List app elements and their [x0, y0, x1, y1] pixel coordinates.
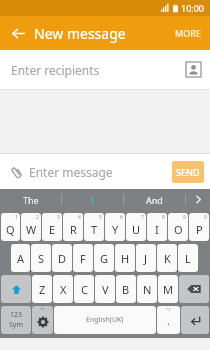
button[interactable]: English(UK): [54, 306, 156, 334]
button[interactable]: Settings: [32, 306, 53, 334]
button[interactable]: K: [157, 244, 177, 272]
staticText: D: [58, 251, 67, 266]
button[interactable]: C: [74, 275, 94, 303]
button[interactable]: A: [11, 244, 30, 272]
button[interactable]: Attach: [5, 161, 27, 183]
button[interactable]: Add contact: [186, 62, 201, 77]
staticText: F: [80, 251, 86, 266]
button[interactable]: G: [94, 244, 114, 272]
staticText: ''': [41, 307, 45, 314]
button[interactable]: 8: [147, 213, 167, 241]
staticText: U: [132, 222, 141, 237]
button[interactable]: H: [115, 244, 135, 272]
staticText: 10:00: [181, 2, 205, 14]
button[interactable]: 1: [1, 213, 20, 241]
button[interactable]: B: [116, 275, 136, 303]
staticText: SEND: [176, 166, 200, 178]
button[interactable]: 6: [105, 213, 125, 241]
staticText: N: [143, 282, 152, 297]
button[interactable]: The: [0, 189, 61, 210]
button[interactable]: J: [136, 244, 156, 272]
staticText: English(UK): [86, 315, 124, 325]
button[interactable]: S: [31, 244, 51, 272]
staticText: I: [155, 222, 159, 237]
button[interactable]: More suggestions: [186, 189, 210, 210]
staticText: S: [38, 251, 45, 266]
staticText: P: [196, 222, 203, 237]
staticText: Enter message: [29, 164, 172, 180]
staticText: X: [60, 282, 67, 297]
staticText: Y: [112, 222, 119, 237]
button[interactable]: D: [52, 244, 72, 272]
staticText: 4: [78, 214, 81, 221]
staticText: G: [100, 251, 109, 266]
staticText: Sym: [9, 320, 23, 330]
staticText: R: [70, 222, 77, 237]
staticText: A: [17, 251, 25, 266]
staticText: 3: [57, 214, 60, 221]
button[interactable]: ''?: [157, 306, 180, 334]
button[interactable]: F: [73, 244, 93, 272]
staticText: And: [146, 194, 163, 206]
button[interactable]: And: [124, 189, 185, 210]
button[interactable]: X: [53, 275, 73, 303]
staticText: H: [121, 251, 130, 266]
staticText: ''?: [166, 307, 171, 314]
button[interactable]: I: [62, 189, 123, 210]
staticText: The: [23, 194, 39, 206]
staticText: W: [26, 222, 37, 237]
staticText: 123: [10, 310, 23, 320]
staticText: New message: [34, 24, 126, 43]
button[interactable]: 9: [168, 213, 188, 241]
button[interactable]: 4: [63, 213, 83, 241]
staticText: 5: [99, 214, 102, 221]
button[interactable]: Shift: [1, 275, 31, 303]
staticText: 1: [15, 214, 18, 221]
staticText: Z: [39, 282, 46, 297]
staticText: L: [185, 251, 191, 266]
button[interactable]: V: [95, 275, 115, 303]
button[interactable]: Z: [32, 275, 52, 303]
button[interactable]: 2: [21, 213, 41, 241]
staticText: 9: [183, 214, 186, 221]
button[interactable]: 7: [126, 213, 146, 241]
staticText: 0: [204, 214, 207, 221]
staticText: Enter recipients: [11, 62, 100, 78]
staticText: C: [81, 282, 88, 297]
staticText: T: [91, 222, 98, 237]
button[interactable]: L: [178, 244, 198, 272]
staticText: 6: [120, 214, 123, 221]
staticText: V: [102, 282, 109, 297]
button[interactable]: SEND: [172, 161, 204, 183]
staticText: B: [122, 282, 130, 297]
staticText: K: [164, 251, 171, 266]
staticText: I: [91, 194, 95, 206]
button[interactable]: 5: [84, 213, 104, 241]
button[interactable]: Back: [7, 22, 29, 44]
staticText: J: [144, 251, 148, 266]
staticText: O: [174, 222, 183, 237]
button[interactable]: 123: [1, 306, 31, 334]
button[interactable]: N: [137, 275, 157, 303]
staticText: M: [163, 282, 173, 297]
staticText: MORE: [175, 27, 202, 39]
button[interactable]: Enter: [181, 306, 209, 334]
staticText: 8: [162, 214, 165, 221]
button[interactable]: Enter recipients: [0, 50, 210, 89]
staticText: E: [49, 222, 56, 237]
button[interactable]: Backspace: [179, 275, 209, 303]
button[interactable]: M: [158, 275, 178, 303]
staticText: 2: [36, 214, 39, 221]
staticText: Q: [6, 222, 15, 237]
staticText: .: [167, 314, 170, 328]
staticText: 7: [141, 214, 144, 221]
button[interactable]: MORE: [167, 21, 210, 45]
button[interactable]: 0: [189, 213, 209, 241]
button[interactable]: 3: [42, 213, 62, 241]
